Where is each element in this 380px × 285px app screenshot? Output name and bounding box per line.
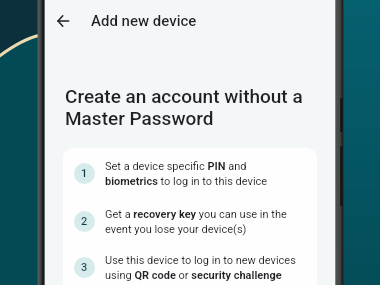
- staticText: 1: [81, 167, 88, 180]
- button[interactable]: 2: [74, 211, 299, 239]
- button[interactable]: 3: [74, 257, 299, 285]
- staticText: Get a recovery key you can use in the ev…: [105, 208, 297, 236]
- button[interactable]: Back: [47, 5, 79, 37]
- staticText: 2: [81, 215, 88, 228]
- staticText: Use this device to log in to new devices…: [105, 254, 297, 282]
- staticText: Create an account without a Master Passw…: [65, 85, 315, 129]
- button[interactable]: 1: [74, 163, 299, 191]
- staticText: 3: [81, 261, 88, 274]
- staticText: Add new device: [91, 12, 197, 30]
- staticText: Set a device specific PIN and biometrics…: [105, 160, 297, 188]
